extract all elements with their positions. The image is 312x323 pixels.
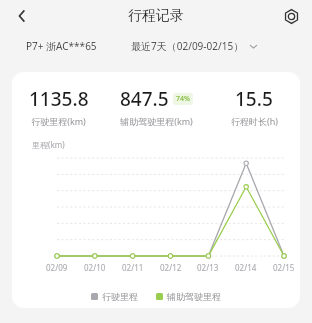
staticText: 行程时长(h) (231, 115, 278, 127)
button[interactable]: P7+ 浙AC***65 (26, 39, 97, 53)
staticText: 74% (176, 94, 190, 104)
staticText: 02/15 (273, 262, 295, 273)
staticText: 里程(km) (32, 139, 65, 150)
button[interactable]: 行驶里程 (89, 289, 140, 304)
button[interactable]: 辅助驾驶里程 (154, 289, 223, 304)
button[interactable]: 1135.8 (12, 86, 105, 127)
staticText: 02/13 (197, 262, 219, 273)
staticText: 行程记录 (128, 7, 184, 25)
staticText: 02/14 (235, 262, 257, 273)
staticText: 02/10 (84, 262, 106, 273)
staticText: 1135.8 (29, 86, 89, 112)
staticText: 行驶里程 (102, 291, 138, 302)
staticText: 02/12 (160, 262, 182, 273)
button[interactable]: 847.5 (105, 86, 208, 127)
staticText: 辅助驾驶里程(km) (120, 115, 193, 127)
button[interactable]: 15.5 (208, 86, 300, 127)
staticText: P7+ 浙AC***65 (26, 39, 97, 53)
button[interactable]: Back (8, 2, 36, 30)
staticText: 02/09 (46, 262, 68, 273)
staticText: 最近7天（02/09-02/15） (131, 39, 244, 53)
staticText: 15.5 (235, 86, 273, 112)
staticText: 辅助驾驶里程 (167, 291, 221, 302)
staticText: 行驶里程(km) (31, 115, 86, 127)
button[interactable]: Settings (278, 3, 304, 29)
staticText: 02/11 (122, 262, 144, 273)
button[interactable]: 最近7天（02/09-02/15） (131, 39, 258, 53)
staticText: 847.5 (120, 86, 169, 112)
